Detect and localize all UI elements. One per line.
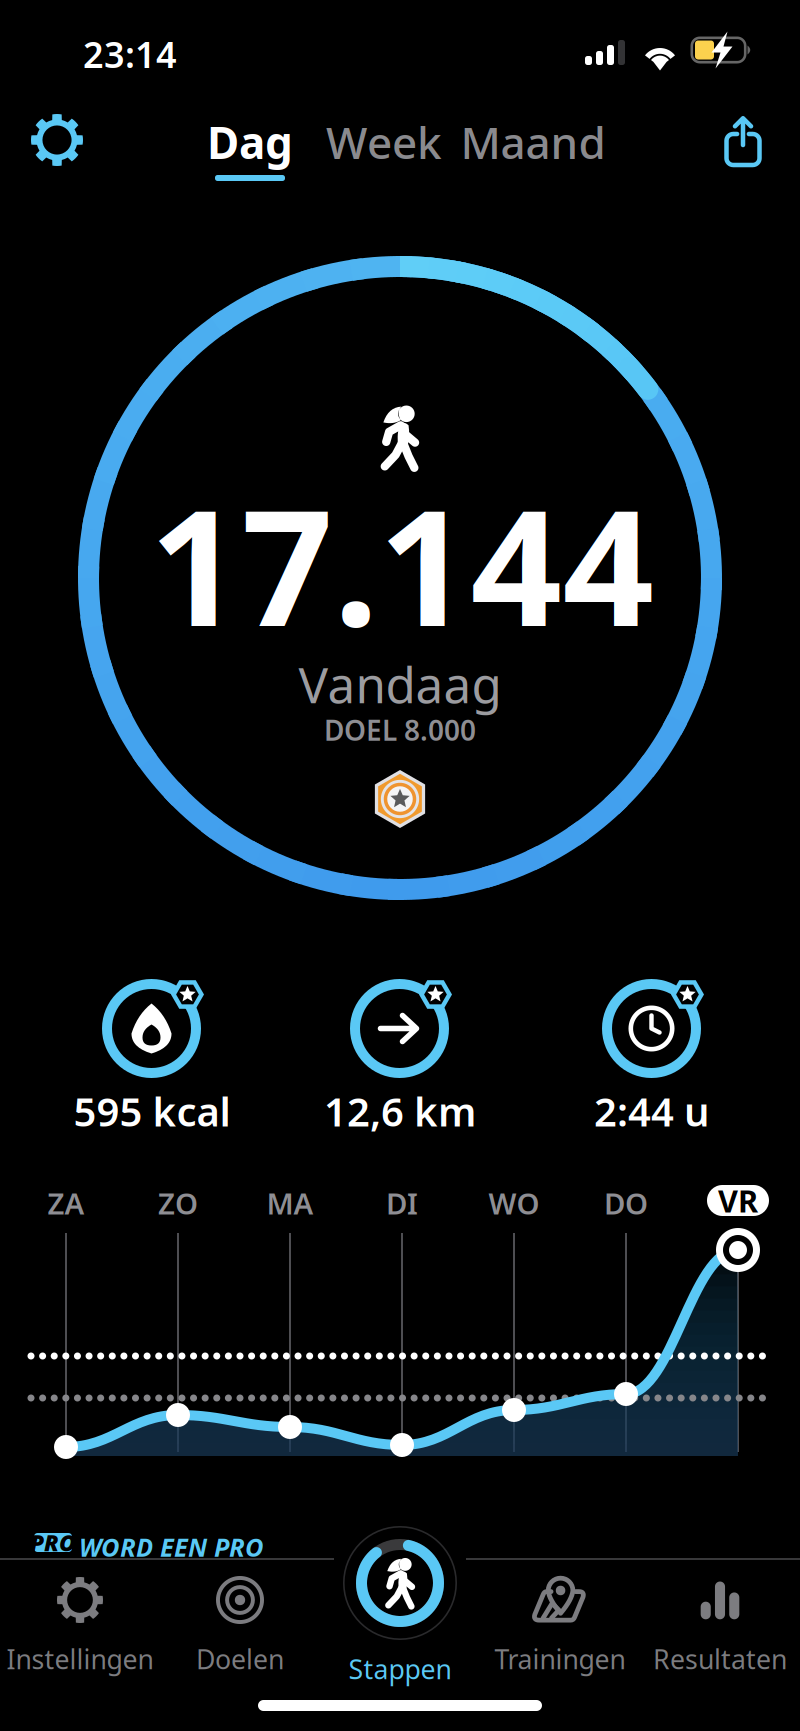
button[interactable]: Dag: [175, 118, 325, 194]
button[interactable]: VR: [707, 1185, 769, 1216]
staticText: 2:44 u: [594, 1084, 710, 1137]
staticText: Maand: [460, 113, 605, 171]
staticText: DI: [386, 1183, 418, 1222]
button[interactable]: Doelen: [160, 1572, 320, 1688]
button[interactable]: Trainingen: [480, 1572, 640, 1688]
button[interactable]: Instellingen: [0, 1572, 160, 1688]
staticText: DOEL 8.000: [324, 711, 476, 749]
button[interactable]: Week: [309, 118, 459, 166]
staticText: DO: [604, 1183, 648, 1222]
button[interactable]: PRO: [0, 1528, 300, 1562]
staticText: WORD EEN PRO: [79, 1530, 264, 1564]
button[interactable]: Stappen: [343, 1526, 457, 1690]
staticText: MA: [266, 1183, 313, 1222]
staticText: WO: [488, 1183, 539, 1222]
staticText: 12,6 km: [324, 1084, 476, 1137]
button[interactable]: Resultaten: [640, 1572, 800, 1688]
staticText: Resultaten: [653, 1641, 787, 1677]
staticText: 17.144: [149, 458, 654, 670]
button[interactable]: 12,6 km: [300, 966, 500, 1141]
button[interactable]: Instellingen: [13, 96, 101, 184]
button[interactable]: 595 kcal: [52, 966, 252, 1141]
staticText: 595 kcal: [73, 1084, 230, 1137]
staticText: Doelen: [196, 1641, 284, 1677]
button[interactable]: Maand: [448, 118, 618, 166]
staticText: PRO: [30, 1527, 76, 1557]
staticText: Trainingen: [494, 1641, 625, 1677]
staticText: VR: [718, 1180, 758, 1221]
button[interactable]: Delen: [699, 96, 787, 184]
staticText: 23:14: [83, 30, 177, 78]
staticText: ZO: [158, 1183, 198, 1222]
button[interactable]: 2:44 u: [552, 966, 752, 1141]
staticText: Dag: [207, 113, 293, 171]
staticText: Week: [326, 113, 442, 171]
staticText: Instellingen: [6, 1641, 153, 1677]
staticText: Vandaag: [298, 651, 501, 717]
staticText: Stappen: [348, 1651, 451, 1687]
staticText: ZA: [47, 1183, 84, 1222]
